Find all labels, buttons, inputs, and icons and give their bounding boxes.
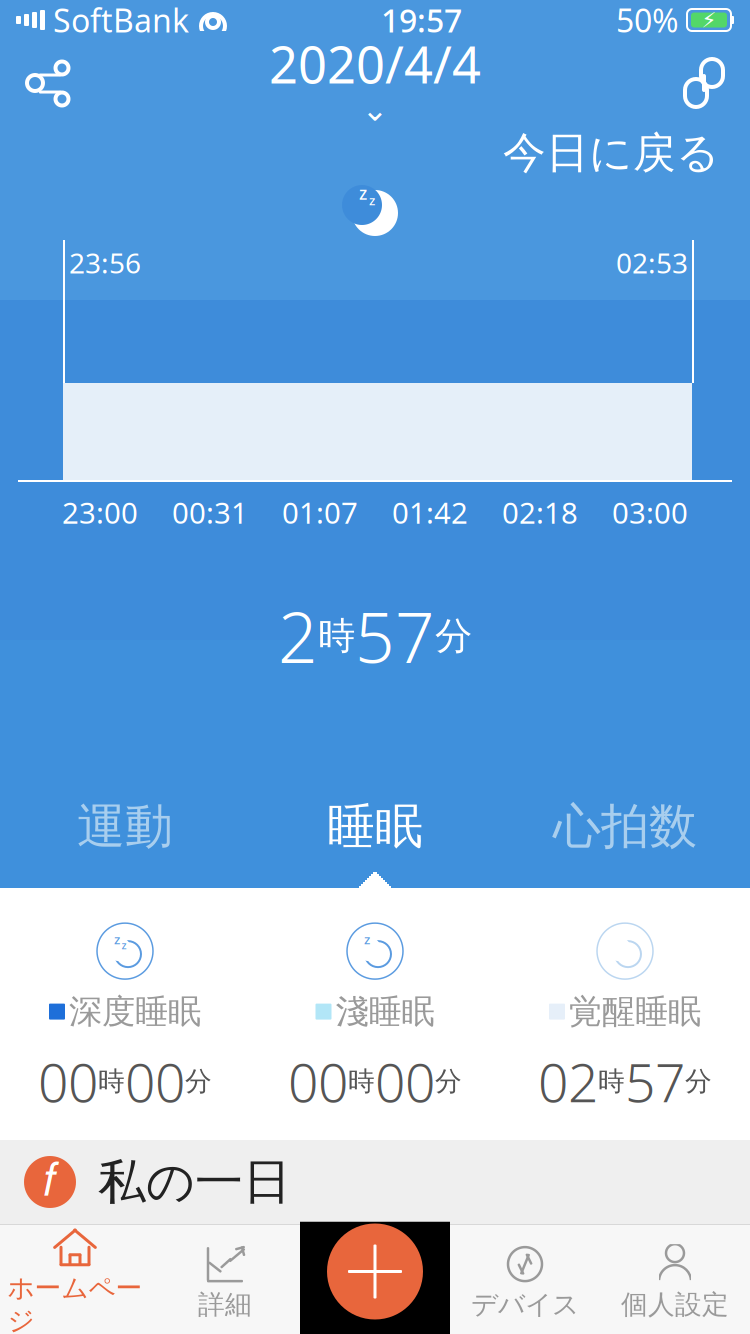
staticText: 淺睡眠 bbox=[335, 991, 434, 1032]
staticText: 個人設定 bbox=[621, 1288, 729, 1321]
staticText: 50% bbox=[616, 0, 679, 41]
staticText: z bbox=[359, 181, 367, 204]
staticText: z bbox=[114, 930, 120, 948]
staticText: 00 bbox=[125, 1046, 185, 1117]
staticText: 02:18 bbox=[502, 493, 578, 532]
staticText: 02 bbox=[538, 1046, 598, 1117]
button[interactable]: デバイス bbox=[450, 1238, 600, 1327]
staticText: 00 bbox=[288, 1046, 348, 1117]
staticText: 時 bbox=[598, 1065, 625, 1098]
button[interactable]: 𝑓 bbox=[0, 1140, 750, 1224]
button[interactable]: 今日に戻る bbox=[497, 123, 726, 183]
staticText: 詳細 bbox=[198, 1288, 252, 1321]
staticText: 23:56 bbox=[69, 244, 141, 281]
staticText: 2020/4/4 bbox=[269, 30, 481, 97]
staticText: 時 bbox=[318, 613, 355, 659]
staticText: 分 bbox=[435, 613, 472, 659]
staticText: 私の一日 bbox=[98, 1152, 291, 1211]
staticText: 23:00 bbox=[62, 493, 138, 532]
staticText: 今日に戻る bbox=[503, 127, 720, 179]
staticText: ⚡︎ bbox=[701, 8, 716, 32]
button[interactable]: 詳細 bbox=[150, 1238, 300, 1327]
button[interactable]: ホームページ bbox=[0, 1222, 150, 1334]
staticText: 01:42 bbox=[392, 493, 468, 532]
button[interactable]: Share bbox=[14, 49, 82, 117]
staticText: 𝑓 bbox=[43, 1160, 57, 1204]
staticText: 57 bbox=[355, 590, 435, 682]
staticText: 00 bbox=[375, 1046, 435, 1117]
staticText: 分 bbox=[185, 1065, 212, 1098]
staticText: 覚醒睡眠 bbox=[569, 991, 701, 1032]
staticText: 心拍数 bbox=[553, 797, 697, 856]
button[interactable]: 睡眠 bbox=[250, 791, 500, 862]
staticText: 19:57 bbox=[381, 0, 462, 41]
staticText: 時 bbox=[98, 1065, 125, 1098]
staticText: 時 bbox=[348, 1065, 375, 1098]
staticText: 2 bbox=[278, 590, 318, 682]
staticText: SoftBank bbox=[53, 0, 189, 41]
button[interactable]: Connect device bbox=[672, 49, 736, 117]
staticText: ⌄ bbox=[361, 91, 388, 128]
button[interactable]: 2020/4/4 bbox=[269, 30, 481, 136]
staticText: 分 bbox=[435, 1065, 462, 1098]
staticText: 00:31 bbox=[172, 493, 248, 532]
staticText: 運動 bbox=[77, 797, 173, 856]
staticText: 睡眠 bbox=[327, 797, 423, 856]
button[interactable]: 個人設定 bbox=[600, 1238, 750, 1327]
staticText: 03:00 bbox=[612, 493, 688, 532]
button[interactable]: 心拍数 bbox=[500, 791, 750, 862]
staticText: ホームページ bbox=[7, 1272, 142, 1334]
staticText: z bbox=[369, 191, 375, 209]
staticText: 02:53 bbox=[616, 244, 688, 281]
button[interactable]: Add bbox=[327, 1223, 423, 1319]
staticText: 00 bbox=[38, 1046, 98, 1117]
staticText: 分 bbox=[685, 1065, 712, 1098]
staticText: z bbox=[121, 938, 126, 952]
staticText: z bbox=[364, 930, 370, 948]
staticText: 01:07 bbox=[282, 493, 358, 532]
button[interactable]: 運動 bbox=[0, 791, 250, 862]
staticText: 57 bbox=[625, 1046, 685, 1117]
staticText: 深度睡眠 bbox=[69, 991, 201, 1032]
staticText: デバイス bbox=[471, 1288, 579, 1321]
